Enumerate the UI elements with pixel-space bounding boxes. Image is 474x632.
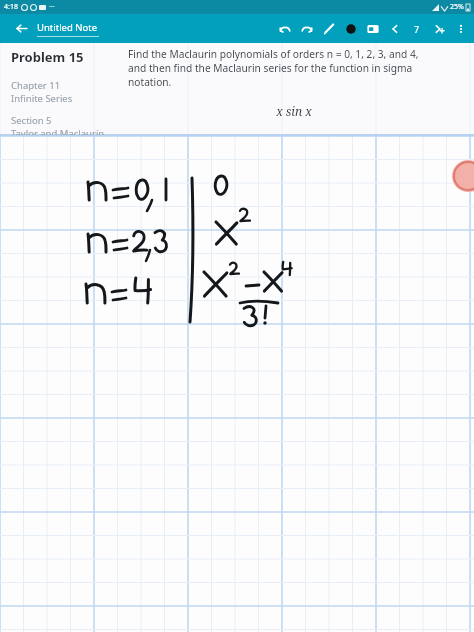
button[interactable]: Untitled Note	[37, 14, 99, 43]
staticText: ···	[49, 2, 55, 12]
staticText: 7	[414, 23, 420, 35]
staticText: 25%	[450, 2, 464, 12]
staticText: Infinite Series	[11, 92, 73, 105]
button[interactable]: Next page	[428, 14, 450, 43]
button[interactable]: Undo	[274, 14, 296, 43]
staticText: notation.	[128, 75, 172, 89]
button[interactable]: Pen	[318, 14, 340, 43]
staticText: Find the Maclaurin polynomials of orders…	[128, 47, 419, 61]
button[interactable]: Back	[8, 14, 34, 43]
staticText: 4:18	[4, 2, 18, 12]
staticText: Section 5	[11, 114, 52, 127]
staticText: x sin x	[128, 103, 460, 119]
staticText: Untitled Note	[37, 21, 98, 34]
button[interactable]: Insert image	[362, 14, 384, 43]
staticText: Chapter 11	[11, 79, 61, 92]
staticText: and then find the Maclaurin series for t…	[128, 61, 413, 75]
button[interactable]: Colour	[340, 14, 362, 43]
staticText: Taylor and Maclaurin	[11, 127, 105, 135]
other: Watermark	[452, 160, 474, 192]
button[interactable]: More options	[450, 14, 472, 43]
staticText: Problem 15	[11, 48, 84, 66]
button[interactable]: Previous page	[384, 14, 406, 43]
button[interactable]: 7	[406, 14, 428, 43]
button[interactable]: Redo	[296, 14, 318, 43]
